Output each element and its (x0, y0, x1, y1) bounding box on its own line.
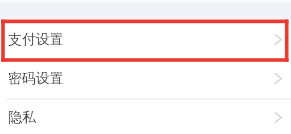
other: 打开支付设置 (270, 33, 284, 47)
button[interactable]: 支付设置 (0, 20, 291, 59)
staticText: 支付设置 (8, 31, 64, 49)
button[interactable]: 密码设置 (0, 59, 291, 98)
staticText: 隐私 (8, 109, 36, 127)
other: 打开密码设置 (270, 72, 284, 86)
button[interactable]: 隐私 (0, 98, 291, 134)
staticText: 密码设置 (8, 70, 64, 88)
other: 打开隐私 (270, 111, 284, 125)
